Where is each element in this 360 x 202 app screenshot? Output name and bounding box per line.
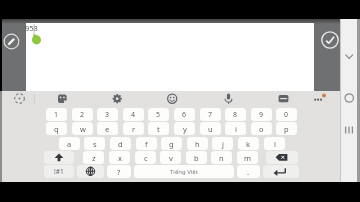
button[interactable]: 7 — [200, 108, 221, 121]
staticText: 7 — [208, 110, 213, 120]
button[interactable]: q — [46, 122, 67, 135]
staticText: j — [222, 139, 224, 149]
staticText: e — [105, 124, 110, 134]
button[interactable]: x — [109, 151, 130, 164]
staticText: ? — [117, 167, 121, 177]
button[interactable]: f — [136, 137, 157, 150]
staticText: c — [144, 153, 148, 163]
button[interactable]: k — [238, 137, 259, 150]
button[interactable]: p — [276, 122, 297, 135]
staticText: d — [118, 139, 123, 149]
button[interactable]: n — [211, 151, 232, 164]
button[interactable] — [276, 91, 291, 106]
staticText: t — [157, 124, 160, 134]
button[interactable]: Tiếng Việt — [134, 165, 234, 178]
staticText: 0 — [284, 110, 289, 120]
button[interactable]: s — [84, 137, 105, 150]
staticText: z — [92, 153, 96, 163]
staticText: 3 — [105, 110, 110, 120]
button[interactable]: 0 — [276, 108, 297, 121]
staticText: i — [235, 124, 237, 134]
button[interactable] — [110, 91, 125, 106]
button[interactable]: u — [200, 122, 221, 135]
button[interactable]: 5 — [148, 108, 169, 121]
button[interactable]: 4 — [123, 108, 144, 121]
staticText: g — [169, 139, 174, 149]
button[interactable]: 6 — [174, 108, 195, 121]
staticText: 2 — [80, 110, 85, 120]
staticText: n — [219, 153, 224, 163]
button[interactable]: 2 — [72, 108, 93, 121]
staticText: m — [244, 153, 252, 163]
button[interactable] — [55, 91, 70, 106]
button[interactable]: o — [251, 122, 272, 135]
staticText: h — [195, 139, 200, 149]
button[interactable]: b — [186, 151, 207, 164]
button[interactable] — [12, 91, 27, 106]
button[interactable]: i — [225, 122, 246, 135]
staticText: 5 — [156, 110, 161, 120]
button[interactable] — [263, 165, 299, 178]
button[interactable] — [165, 91, 180, 106]
button[interactable]: e — [97, 122, 118, 135]
button[interactable] — [311, 91, 327, 106]
button[interactable]: c — [135, 151, 156, 164]
staticText: !#1 — [54, 167, 64, 176]
staticText: l — [274, 139, 276, 149]
staticText: . — [247, 166, 250, 177]
button[interactable]: g — [161, 137, 182, 150]
button[interactable]: z — [83, 151, 104, 164]
staticText: w — [80, 124, 86, 134]
button[interactable]: . — [237, 165, 260, 178]
staticText: s — [93, 139, 97, 149]
button[interactable]: 3 — [97, 108, 118, 121]
button[interactable]: d — [110, 137, 131, 150]
staticText: a — [67, 139, 72, 149]
button[interactable] — [3, 33, 20, 50]
button[interactable]: 8 — [225, 108, 246, 121]
staticText: u — [208, 124, 213, 134]
button[interactable] — [266, 151, 298, 164]
button[interactable] — [44, 151, 74, 164]
staticText: p — [284, 124, 289, 134]
staticText: q — [54, 124, 59, 134]
staticText: 8 — [233, 110, 238, 120]
button[interactable]: ? — [107, 165, 131, 178]
button[interactable]: 1 — [46, 108, 67, 121]
button[interactable]: a — [59, 137, 80, 150]
button[interactable]: w — [72, 122, 93, 135]
button[interactable] — [221, 91, 236, 106]
button[interactable]: 9 — [251, 108, 272, 121]
staticText: 958 — [25, 23, 38, 33]
staticText: o — [259, 124, 264, 134]
staticText: k — [246, 139, 251, 149]
staticText: 6 — [182, 110, 187, 120]
staticText: r — [132, 124, 136, 134]
staticText: 1 — [54, 110, 59, 120]
button[interactable]: m — [237, 151, 258, 164]
staticText: 9 — [259, 110, 264, 120]
button[interactable]: j — [212, 137, 233, 150]
staticText: Tiếng Việt — [170, 168, 198, 176]
staticText: y — [183, 124, 187, 134]
staticText: v — [169, 153, 173, 163]
staticText: x — [118, 153, 122, 163]
button[interactable]: t — [148, 122, 169, 135]
button[interactable]: v — [160, 151, 181, 164]
button[interactable]: y — [174, 122, 195, 135]
staticText: f — [145, 139, 148, 149]
button[interactable] — [26, 23, 314, 91]
button[interactable]: l — [264, 137, 285, 150]
staticText: 4 — [131, 110, 136, 120]
button[interactable]: h — [187, 137, 208, 150]
button[interactable]: !#1 — [44, 165, 74, 178]
button[interactable] — [77, 165, 104, 178]
button[interactable]: r — [123, 122, 144, 135]
button[interactable] — [321, 31, 339, 49]
staticText: b — [194, 153, 199, 163]
